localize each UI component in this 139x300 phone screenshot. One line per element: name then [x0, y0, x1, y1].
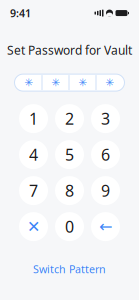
- button[interactable]: 5: [55, 140, 84, 169]
- button[interactable]: 3: [91, 104, 120, 133]
- button[interactable]: 1: [19, 104, 48, 133]
- button[interactable]: 4: [19, 140, 48, 169]
- button[interactable]: 7: [19, 176, 48, 205]
- staticText: ✳: [78, 76, 87, 89]
- staticText: 6: [101, 144, 110, 165]
- button[interactable]: 6: [91, 140, 120, 169]
- button[interactable]: 2: [55, 104, 84, 133]
- staticText: 1: [29, 108, 38, 129]
- staticText: ←: [99, 217, 112, 236]
- staticText: 2: [65, 108, 74, 129]
- staticText: 5: [65, 144, 74, 165]
- button[interactable]: Switch Pattern: [25, 258, 114, 280]
- staticText: Set Password for Vault: [7, 42, 132, 58]
- button[interactable]: 8: [55, 176, 84, 205]
- staticText: 9: [101, 180, 110, 201]
- button[interactable]: Clear: [19, 212, 48, 241]
- staticText: ✳: [24, 76, 33, 89]
- staticText: Switch Pattern: [33, 262, 106, 276]
- staticText: 8: [65, 180, 74, 201]
- staticText: 4: [29, 144, 38, 165]
- staticText: ✳: [105, 76, 114, 89]
- button[interactable]: 0: [55, 212, 84, 241]
- staticText: ✕: [27, 217, 40, 236]
- staticText: 3: [101, 108, 110, 129]
- staticText: 0: [65, 216, 74, 237]
- staticText: ✳: [51, 76, 60, 89]
- staticText: 9:41: [10, 6, 31, 20]
- button[interactable]: 9: [91, 176, 120, 205]
- button[interactable]: Delete: [91, 212, 120, 241]
- staticText: 7: [29, 180, 38, 201]
